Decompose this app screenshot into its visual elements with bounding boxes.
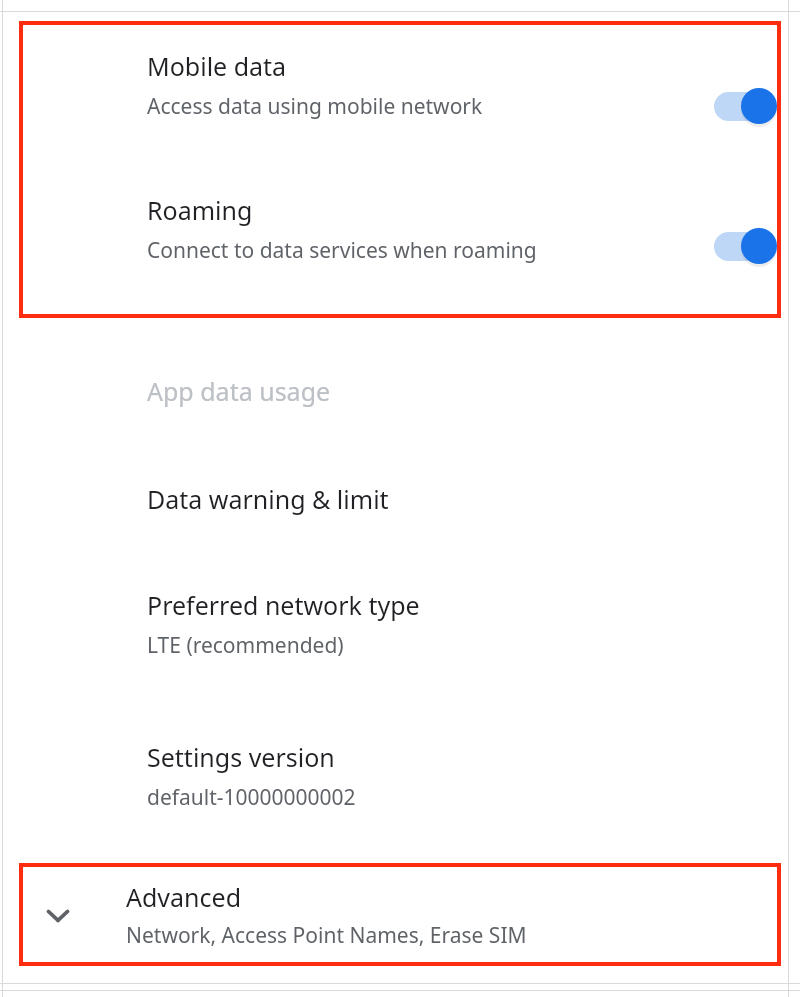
staticText: Mobile data — [147, 49, 287, 83]
staticText: Access data using mobile network — [147, 92, 483, 121]
staticText: App data usage — [147, 374, 331, 408]
staticText: Roaming — [147, 193, 253, 227]
staticText: Data warning & limit — [147, 482, 389, 516]
button[interactable]: Settings version — [21, 712, 779, 830]
button[interactable]: Data warning & limit — [21, 452, 779, 544]
button[interactable]: Advanced — [21, 865, 779, 964]
staticText: LTE (recommended) — [147, 631, 344, 660]
button[interactable]: Preferred network type — [21, 560, 779, 678]
staticText: Advanced — [126, 880, 242, 914]
staticText: default-10000000002 — [147, 783, 356, 812]
staticText: Preferred network type — [147, 588, 420, 622]
staticText: Settings version — [147, 740, 335, 774]
button[interactable]: Roaming — [21, 170, 779, 316]
staticText: Network, Access Point Names, Erase SIM — [126, 921, 527, 950]
button[interactable]: Mobile data — [21, 23, 779, 168]
button[interactable]: App data usage — [21, 345, 779, 437]
staticText: Connect to data services when roaming — [147, 236, 537, 265]
button[interactable]: Switch, on — [711, 224, 781, 268]
button[interactable]: Switch, on — [711, 84, 781, 128]
